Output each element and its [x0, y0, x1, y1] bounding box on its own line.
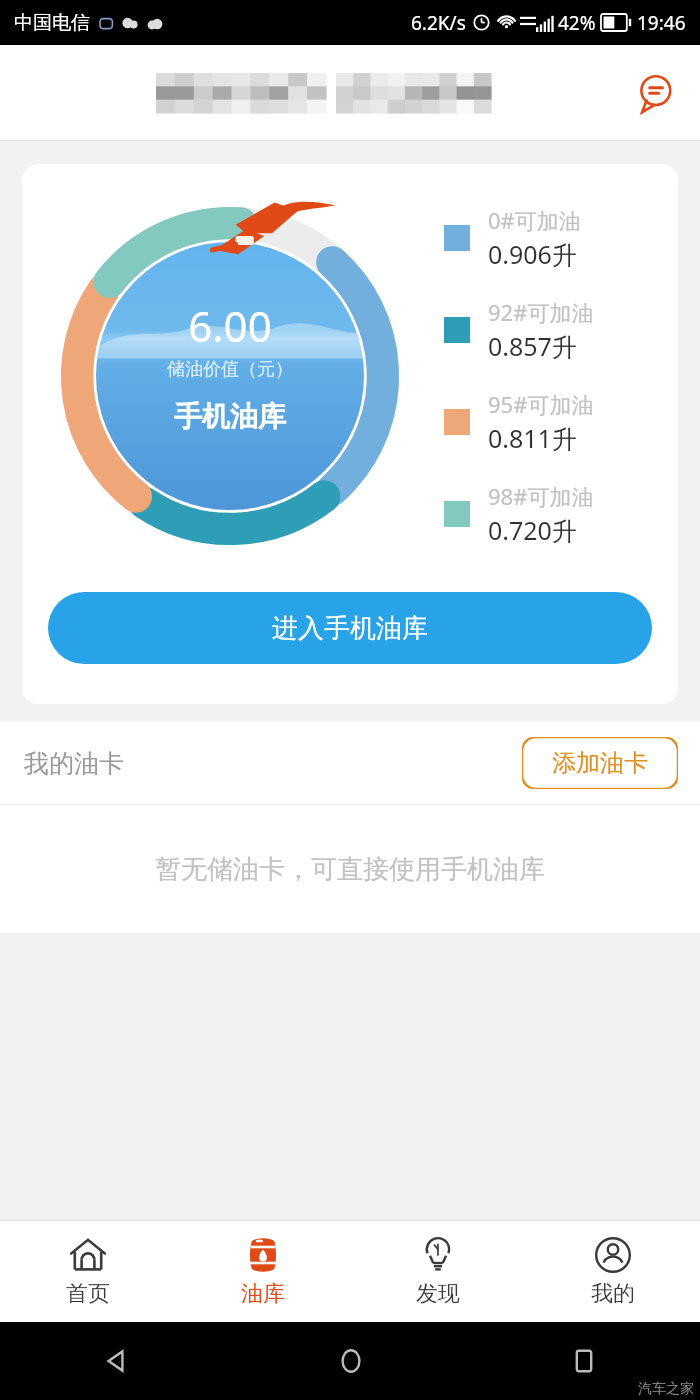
staticText: 95#可加油: [488, 389, 594, 419]
button[interactable]: Customer service chat: [628, 66, 682, 120]
staticText: 我的: [591, 1280, 635, 1308]
staticText: 油库: [241, 1280, 285, 1308]
staticText: 手机油库: [174, 399, 286, 434]
button[interactable]: 油库: [175, 1220, 350, 1322]
staticText: 进入手机油库: [272, 612, 428, 645]
button[interactable]: Recent apps: [467, 1322, 700, 1400]
staticText: 0.720升: [488, 513, 577, 547]
button[interactable]: Home: [234, 1322, 467, 1400]
staticText: 92#可加油: [488, 297, 594, 327]
staticText: 6.2K/s: [411, 10, 466, 36]
staticText: 中国电信: [14, 11, 90, 35]
staticText: 98#可加油: [488, 481, 594, 511]
button[interactable]: 我的: [525, 1220, 700, 1322]
staticText: 42%: [558, 10, 596, 36]
staticText: 首页: [66, 1280, 110, 1308]
button[interactable]: Back: [0, 1322, 234, 1400]
button[interactable]: 发现: [350, 1220, 525, 1322]
staticText: 0#可加油: [488, 205, 581, 235]
staticText: 我的油卡: [24, 748, 124, 779]
staticText: 6.00: [188, 297, 272, 354]
staticText: 汽车之家: [638, 1380, 694, 1398]
staticText: 0.811升: [488, 421, 577, 455]
staticText: 储油价值（元）: [167, 358, 293, 381]
button[interactable]: 进入手机油库: [48, 592, 652, 664]
staticText: 发现: [416, 1280, 460, 1308]
staticText: 添加油卡: [552, 748, 648, 778]
staticText: 0.857升: [488, 329, 577, 363]
button[interactable]: 首页: [0, 1220, 175, 1322]
staticText: 暂无储油卡，可直接使用手机油库: [155, 853, 545, 886]
staticText: 19:46: [637, 10, 686, 36]
staticText: 0.906升: [488, 237, 577, 271]
button[interactable]: 添加油卡: [522, 737, 678, 789]
